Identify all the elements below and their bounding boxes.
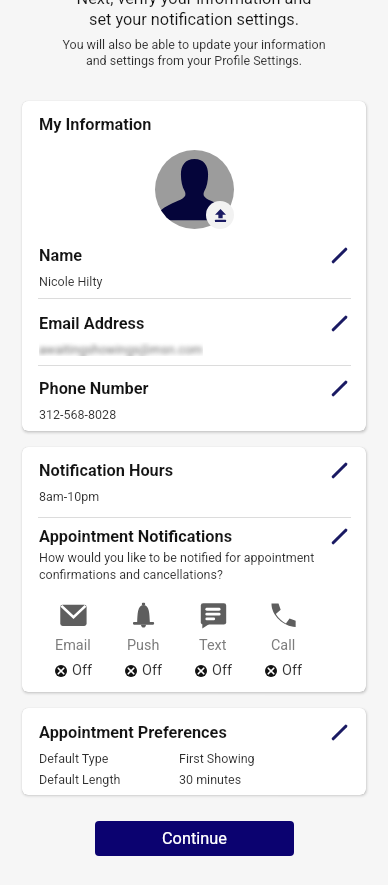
- staticText: Email: [55, 637, 91, 654]
- button[interactable]: Edit: [327, 524, 351, 548]
- button[interactable]: Phone Number: [22, 379, 366, 422]
- staticText: 8am-10pm: [39, 489, 100, 504]
- staticText: Text: [199, 637, 227, 654]
- staticText: First Showing: [179, 751, 255, 766]
- staticText: Next, verify your information and set yo…: [0, 0, 388, 29]
- button[interactable]: Edit: [327, 720, 351, 744]
- staticText: Nicole Hilty: [39, 274, 103, 289]
- staticText: awaitingshowings@msn.com: [39, 342, 203, 356]
- staticText: Continue: [162, 829, 227, 848]
- staticText: Notification Hours: [39, 461, 174, 480]
- staticText: My Information: [39, 115, 152, 134]
- button[interactable]: Upload photo: [206, 201, 234, 229]
- staticText: Off: [212, 662, 232, 679]
- button[interactable]: Edit: [327, 458, 351, 482]
- staticText: 312-568-8028: [39, 407, 117, 422]
- button[interactable]: Call: [248, 602, 318, 679]
- staticText: Off: [72, 662, 92, 679]
- staticText: Default Type: [39, 751, 179, 766]
- button[interactable]: Push: [108, 602, 178, 679]
- staticText: Name: [39, 246, 83, 265]
- staticText: Appointment Notifications: [39, 527, 233, 546]
- staticText: Appointment Preferences: [39, 723, 227, 742]
- button[interactable]: Continue: [95, 821, 294, 856]
- staticText: Call: [271, 637, 296, 654]
- staticText: You will also be able to update your inf…: [0, 37, 388, 69]
- button[interactable]: Notification Hours: [22, 461, 366, 504]
- staticText: Push: [127, 637, 160, 654]
- staticText: Default Length: [39, 772, 179, 787]
- staticText: Phone Number: [39, 379, 149, 398]
- button[interactable]: Edit: [327, 376, 351, 400]
- button[interactable]: Edit: [327, 243, 351, 267]
- staticText: Email Address: [39, 314, 145, 333]
- staticText: How would you like to be notified for ap…: [39, 550, 315, 582]
- staticText: 30 minutes: [179, 772, 242, 787]
- button[interactable]: Text: [178, 602, 248, 679]
- staticText: Off: [282, 662, 302, 679]
- button[interactable]: Email: [38, 602, 108, 679]
- staticText: Off: [142, 662, 162, 679]
- button[interactable]: Name: [22, 246, 366, 289]
- button[interactable]: Email Address: [22, 314, 366, 356]
- button[interactable]: Edit: [327, 311, 351, 335]
